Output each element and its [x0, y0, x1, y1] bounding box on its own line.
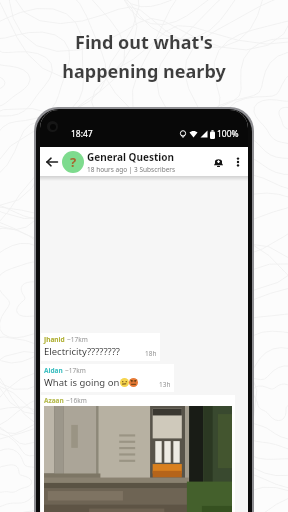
staticText: 18:47 — [71, 128, 93, 140]
staticText: Azaan — [44, 396, 64, 405]
staticText: Find out what's — [0, 30, 288, 55]
staticText: 100% — [217, 128, 239, 140]
staticText: happening nearby — [0, 59, 288, 84]
staticText: What is going on — [44, 376, 120, 389]
staticText: General Question — [87, 150, 174, 164]
button[interactable]: Jhanid — [44, 335, 157, 358]
staticText: ~17km — [67, 335, 88, 344]
staticText: ~17km — [65, 366, 86, 375]
button[interactable]: More options — [230, 154, 245, 169]
staticText: 13h — [159, 380, 171, 389]
staticText: Electricity???????? — [44, 345, 120, 358]
staticText: 18h — [145, 349, 157, 358]
button[interactable]: Subscribe — [209, 153, 227, 171]
staticText: Aidan — [44, 366, 63, 375]
button[interactable]: Aidan — [44, 366, 171, 389]
staticText: 18 hours ago | 3 Subscribers — [87, 165, 176, 174]
staticText: Jhanid — [44, 335, 65, 344]
staticText: ~16km — [66, 396, 87, 405]
button[interactable]: Back — [43, 153, 60, 170]
staticText: ? — [70, 153, 77, 171]
